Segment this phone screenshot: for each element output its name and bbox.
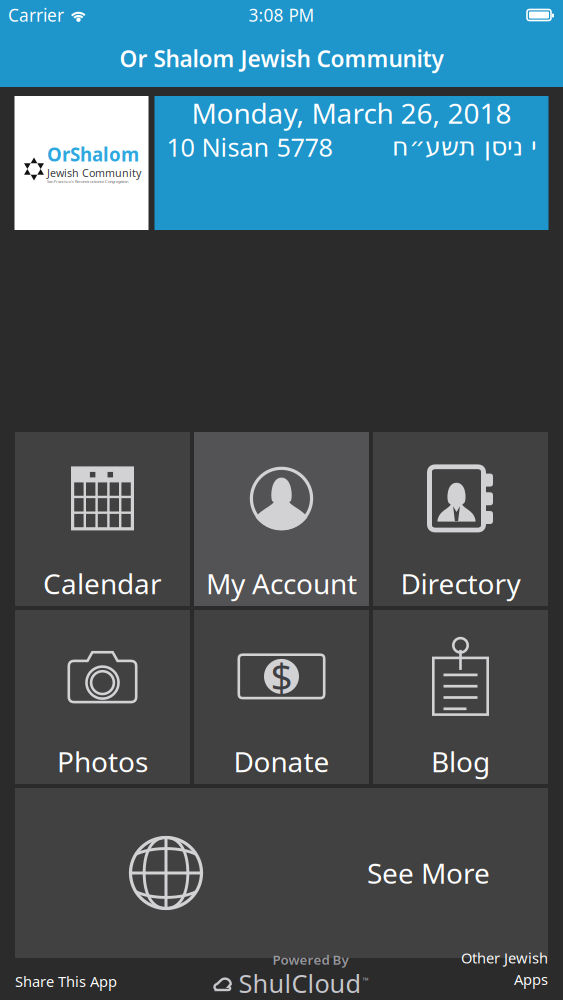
staticText: Powered By <box>272 951 348 968</box>
button[interactable]: Powered by ShulCloud <box>209 951 368 1000</box>
staticText: Photos <box>57 743 148 780</box>
staticText: Jewish Community <box>47 166 141 180</box>
staticText: OrShalom <box>47 142 139 167</box>
staticText: 10 Nisan 5778 <box>166 130 332 164</box>
button[interactable]: See More <box>15 788 548 958</box>
button[interactable]: My Account <box>194 432 369 606</box>
staticText: Other Jewish <box>461 948 548 967</box>
staticText: Monday, March 26, 2018 <box>191 94 511 132</box>
staticText: י ניסן תשע״ח <box>391 132 536 161</box>
button[interactable]: Or Shalom Jewish Community <box>14 96 148 230</box>
button[interactable]: Other Jewish <box>461 948 548 1000</box>
staticText: Apps <box>514 969 548 989</box>
staticText: $ <box>270 651 292 702</box>
button[interactable]: $ <box>194 610 369 784</box>
button[interactable]: Share This App <box>15 971 117 1000</box>
staticText: San Francisco's Reconstructionist Congre… <box>47 179 128 184</box>
staticText: Share This App <box>15 971 117 991</box>
staticText: Or Shalom Jewish Community <box>119 43 443 73</box>
staticText: 3:08 PM <box>248 3 314 26</box>
button[interactable]: Calendar <box>15 432 190 606</box>
staticText: My Account <box>206 565 357 602</box>
staticText: ™ <box>362 975 368 986</box>
button[interactable]: Blog <box>373 610 548 784</box>
staticText: Blog <box>431 743 490 780</box>
button[interactable]: Directory <box>373 432 548 606</box>
staticText: ShulCloud <box>238 966 361 1000</box>
button[interactable]: Photos <box>15 610 190 784</box>
button[interactable]: Date <box>154 96 548 230</box>
staticText: See More <box>367 854 490 892</box>
staticText: Directory <box>400 565 520 602</box>
staticText: Donate <box>233 743 329 780</box>
staticText: Carrier <box>8 3 64 26</box>
staticText: Calendar <box>43 565 162 602</box>
